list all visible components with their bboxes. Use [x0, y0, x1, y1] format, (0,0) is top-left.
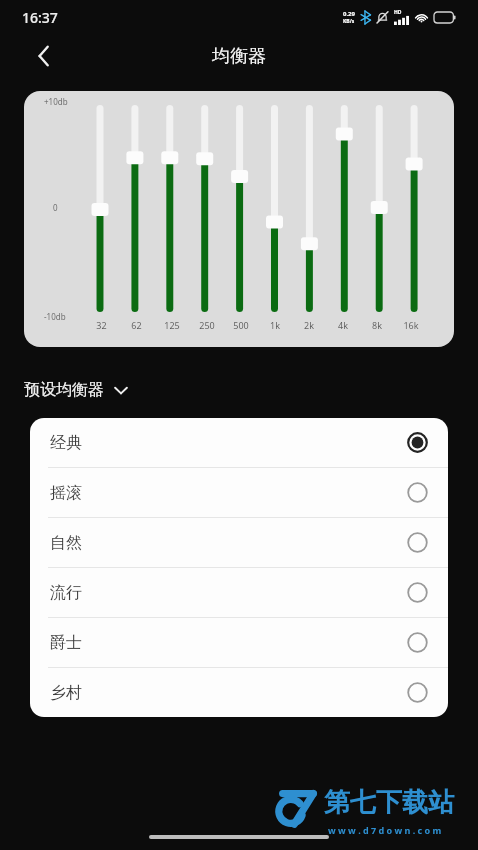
staticText: 均衡器	[212, 45, 266, 68]
staticText: 32	[96, 319, 107, 331]
staticText: 第七下载站	[324, 786, 454, 819]
staticText: 经典	[50, 433, 82, 453]
staticText: 自然	[50, 533, 82, 553]
staticText: 爵士	[50, 633, 82, 653]
button[interactable]: 经典	[30, 418, 448, 467]
staticText: 250	[199, 319, 215, 331]
staticText: w w w . d 7 d o w n . c o m	[328, 824, 442, 836]
button[interactable]: 乡村	[30, 668, 448, 717]
button[interactable]: 自然	[30, 518, 448, 567]
staticText: 1k	[270, 319, 280, 331]
button[interactable]: Equalizer bands	[24, 91, 454, 347]
staticText: 2k	[304, 319, 314, 331]
staticText: HD	[394, 9, 402, 16]
staticText: 8k	[372, 319, 382, 331]
button[interactable]: Back	[24, 37, 62, 75]
staticText: +10db	[44, 96, 68, 107]
staticText: -10db	[44, 311, 66, 322]
staticText: 62	[131, 319, 142, 331]
staticText: 125	[164, 319, 180, 331]
staticText: 摇滚	[50, 483, 82, 503]
button[interactable]: 摇滚	[30, 468, 448, 517]
staticText: KB/s	[343, 18, 355, 25]
staticText: 500	[233, 319, 249, 331]
staticText: 16:37	[22, 8, 58, 27]
staticText: 流行	[50, 583, 82, 603]
staticText: 乡村	[50, 683, 82, 703]
staticText: 4k	[338, 319, 348, 331]
staticText: 16k	[403, 319, 419, 331]
staticText: 0	[53, 202, 58, 213]
button[interactable]: 爵士	[30, 618, 448, 667]
button[interactable]: 预设均衡器	[24, 380, 128, 400]
staticText: 预设均衡器	[24, 380, 104, 400]
staticText: 0.29	[343, 10, 355, 18]
button[interactable]: 流行	[30, 568, 448, 617]
